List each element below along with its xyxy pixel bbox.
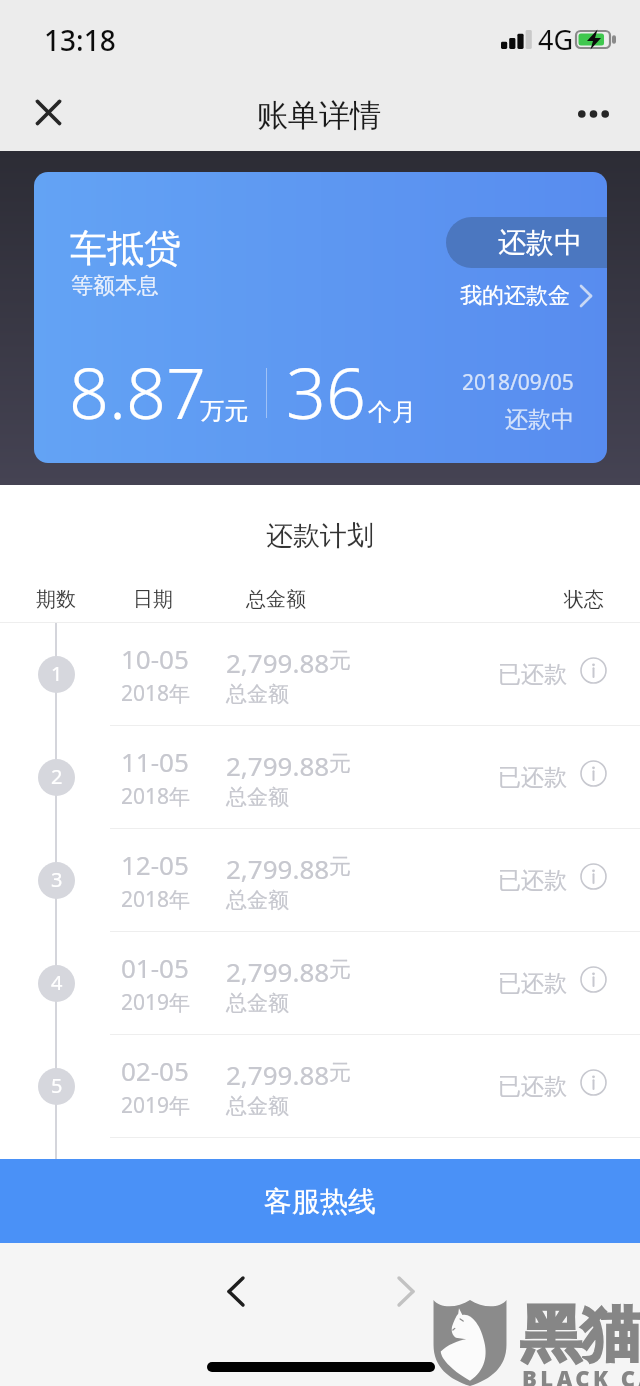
staticText: 11-05: [121, 744, 189, 779]
button[interactable]: 还款中: [446, 217, 607, 268]
staticText: 元: [329, 853, 351, 881]
staticText: 4: [51, 969, 63, 996]
staticText: 客服热线: [264, 1184, 376, 1219]
staticText: 总金额: [226, 990, 289, 1016]
button[interactable]: 2: [0, 726, 640, 829]
staticText: 还款计划: [0, 519, 640, 553]
staticText: 01-05: [121, 950, 189, 985]
staticText: 我的还款金: [460, 282, 570, 310]
staticText: 2018年: [121, 885, 191, 914]
staticText: 4G: [538, 21, 574, 58]
staticText: 3: [51, 866, 63, 893]
staticText: 2: [51, 763, 63, 790]
staticText: 日期: [133, 587, 173, 612]
staticText: 元: [329, 647, 351, 675]
button[interactable]: Back: [198, 1253, 274, 1329]
staticText: 期数: [36, 587, 76, 612]
button[interactable]: 车抵贷: [34, 172, 607, 463]
staticText: 2,799.88: [226, 748, 330, 783]
button[interactable]: 5: [0, 1035, 640, 1138]
staticText: 还款中: [505, 405, 574, 434]
staticText: 2,799.88: [226, 851, 330, 886]
staticText: 已还款: [498, 1072, 567, 1101]
staticText: 已还款: [498, 866, 567, 895]
button[interactable]: Forward: [368, 1253, 444, 1329]
button[interactable]: 4: [0, 932, 640, 1035]
staticText: 已还款: [498, 763, 567, 792]
staticText: 总金额: [246, 587, 306, 612]
button[interactable]: Details: [580, 760, 607, 787]
staticText: 2,799.88: [226, 1057, 330, 1092]
staticText: 还款中: [498, 225, 582, 260]
staticText: 2019年: [121, 1091, 191, 1120]
staticText: 总金额: [226, 887, 289, 913]
button[interactable]: 客服热线: [0, 1159, 640, 1243]
button[interactable]: Details: [580, 1069, 607, 1096]
button[interactable]: Details: [580, 966, 607, 993]
staticText: 黑猫: [520, 1296, 640, 1373]
button[interactable]: More options: [557, 78, 629, 150]
staticText: 元: [329, 750, 351, 778]
staticText: 总金额: [226, 681, 289, 707]
staticText: 等额本息: [71, 272, 159, 300]
staticText: 2018年: [121, 679, 191, 708]
button[interactable]: 1: [0, 623, 640, 726]
button[interactable]: Details: [580, 863, 607, 890]
staticText: 2,799.88: [226, 954, 330, 989]
staticText: 2019年: [121, 988, 191, 1017]
staticText: 10-05: [121, 641, 189, 676]
staticText: 1: [51, 660, 63, 687]
button[interactable]: 我的还款金: [460, 282, 592, 310]
staticText: 2,799.88: [226, 645, 330, 680]
staticText: 元: [329, 956, 351, 984]
staticText: 36: [286, 344, 366, 439]
staticText: 02-05: [121, 1053, 189, 1088]
staticText: 元: [329, 1059, 351, 1087]
staticText: 5: [51, 1072, 63, 1099]
staticText: 账单详情: [257, 96, 381, 135]
staticText: 8.87: [69, 344, 206, 439]
staticText: BLACK CAT: [522, 1363, 640, 1386]
staticText: 个月: [368, 397, 416, 427]
staticText: 2018/09/05: [462, 368, 574, 397]
staticText: 已还款: [498, 969, 567, 998]
staticText: 12-05: [121, 847, 189, 882]
staticText: 已还款: [498, 660, 567, 689]
staticText: 13:18: [44, 21, 116, 59]
staticText: 车抵贷: [70, 225, 181, 272]
button[interactable]: Close: [12, 76, 84, 148]
staticText: 2018年: [121, 782, 191, 811]
staticText: 万元: [200, 396, 248, 426]
staticText: 总金额: [226, 784, 289, 810]
button[interactable]: Details: [580, 657, 607, 684]
staticText: 总金额: [226, 1093, 289, 1119]
staticText: 状态: [564, 587, 604, 612]
button[interactable]: 3: [0, 829, 640, 932]
